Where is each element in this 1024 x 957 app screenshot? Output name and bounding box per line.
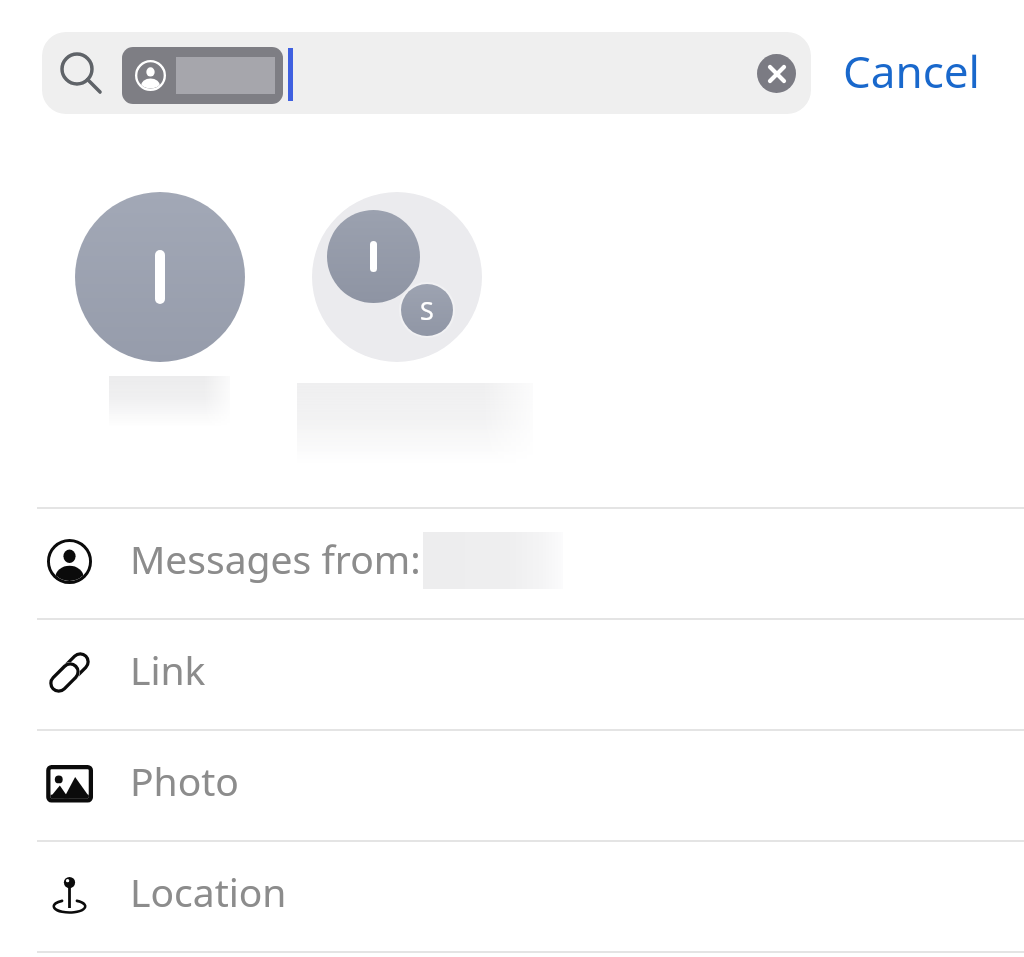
- button[interactable]: Messages from: [0, 509, 1024, 618]
- staticText: Location: [130, 865, 287, 918]
- other: Search: [61, 53, 103, 95]
- staticText: S: [420, 293, 434, 327]
- button[interactable]: Contact avatar: [75, 192, 245, 362]
- other: Contact: [135, 60, 166, 91]
- button[interactable]: Photo: [0, 731, 1024, 840]
- other: Location: [47, 872, 92, 917]
- button[interactable]: Link: [0, 620, 1024, 729]
- staticText: Cancel: [843, 41, 980, 101]
- button[interactable]: Contact: [122, 47, 283, 104]
- other: Photo: [47, 761, 92, 806]
- button[interactable]: Cancel: [833, 31, 990, 111]
- staticText: Photo: [130, 754, 239, 807]
- other: Link: [47, 650, 92, 695]
- button[interactable]: Location: [0, 842, 1024, 951]
- button[interactable]: Clear search: [757, 54, 796, 93]
- staticText: Link: [130, 643, 206, 696]
- button[interactable]: Group avatar: [312, 192, 482, 362]
- button[interactable]: Search: [42, 32, 811, 114]
- other: Messages from: [47, 539, 92, 584]
- staticText: Messages from:: [130, 532, 421, 585]
